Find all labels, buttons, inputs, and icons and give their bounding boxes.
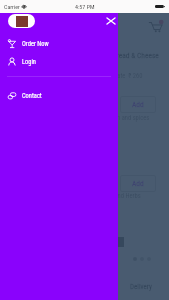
staticText: 4:57 PM [75, 3, 95, 10]
button[interactable]: Cart [147, 18, 164, 35]
staticText: Tandoori chicken breast with Cheese, Dil… [8, 192, 141, 200]
staticText: Order Now [22, 40, 49, 48]
staticText: Half Plate ₹ 260 [100, 72, 143, 80]
staticText: Delivery [130, 283, 152, 291]
button[interactable]: Login [0, 54, 118, 70]
button[interactable]: Delivery [113, 274, 169, 300]
staticText: Add [132, 179, 144, 188]
button[interactable]: Close menu [104, 14, 118, 28]
staticText: Creamy Buttery Chicken With Naan Bread &… [8, 51, 159, 60]
staticText: Carrier [4, 3, 20, 10]
button[interactable]: Add [120, 96, 156, 113]
staticText: Login [22, 58, 36, 66]
button[interactable]: Add [120, 175, 156, 192]
button[interactable]: Order Now [0, 36, 118, 52]
button[interactable]: Contact [0, 88, 118, 104]
button[interactable]: Open menu [6, 19, 21, 34]
staticText: Contact [22, 92, 42, 100]
staticText: Add [132, 100, 144, 109]
staticText: Boneless chicken cooked with butter, cre… [8, 114, 150, 122]
